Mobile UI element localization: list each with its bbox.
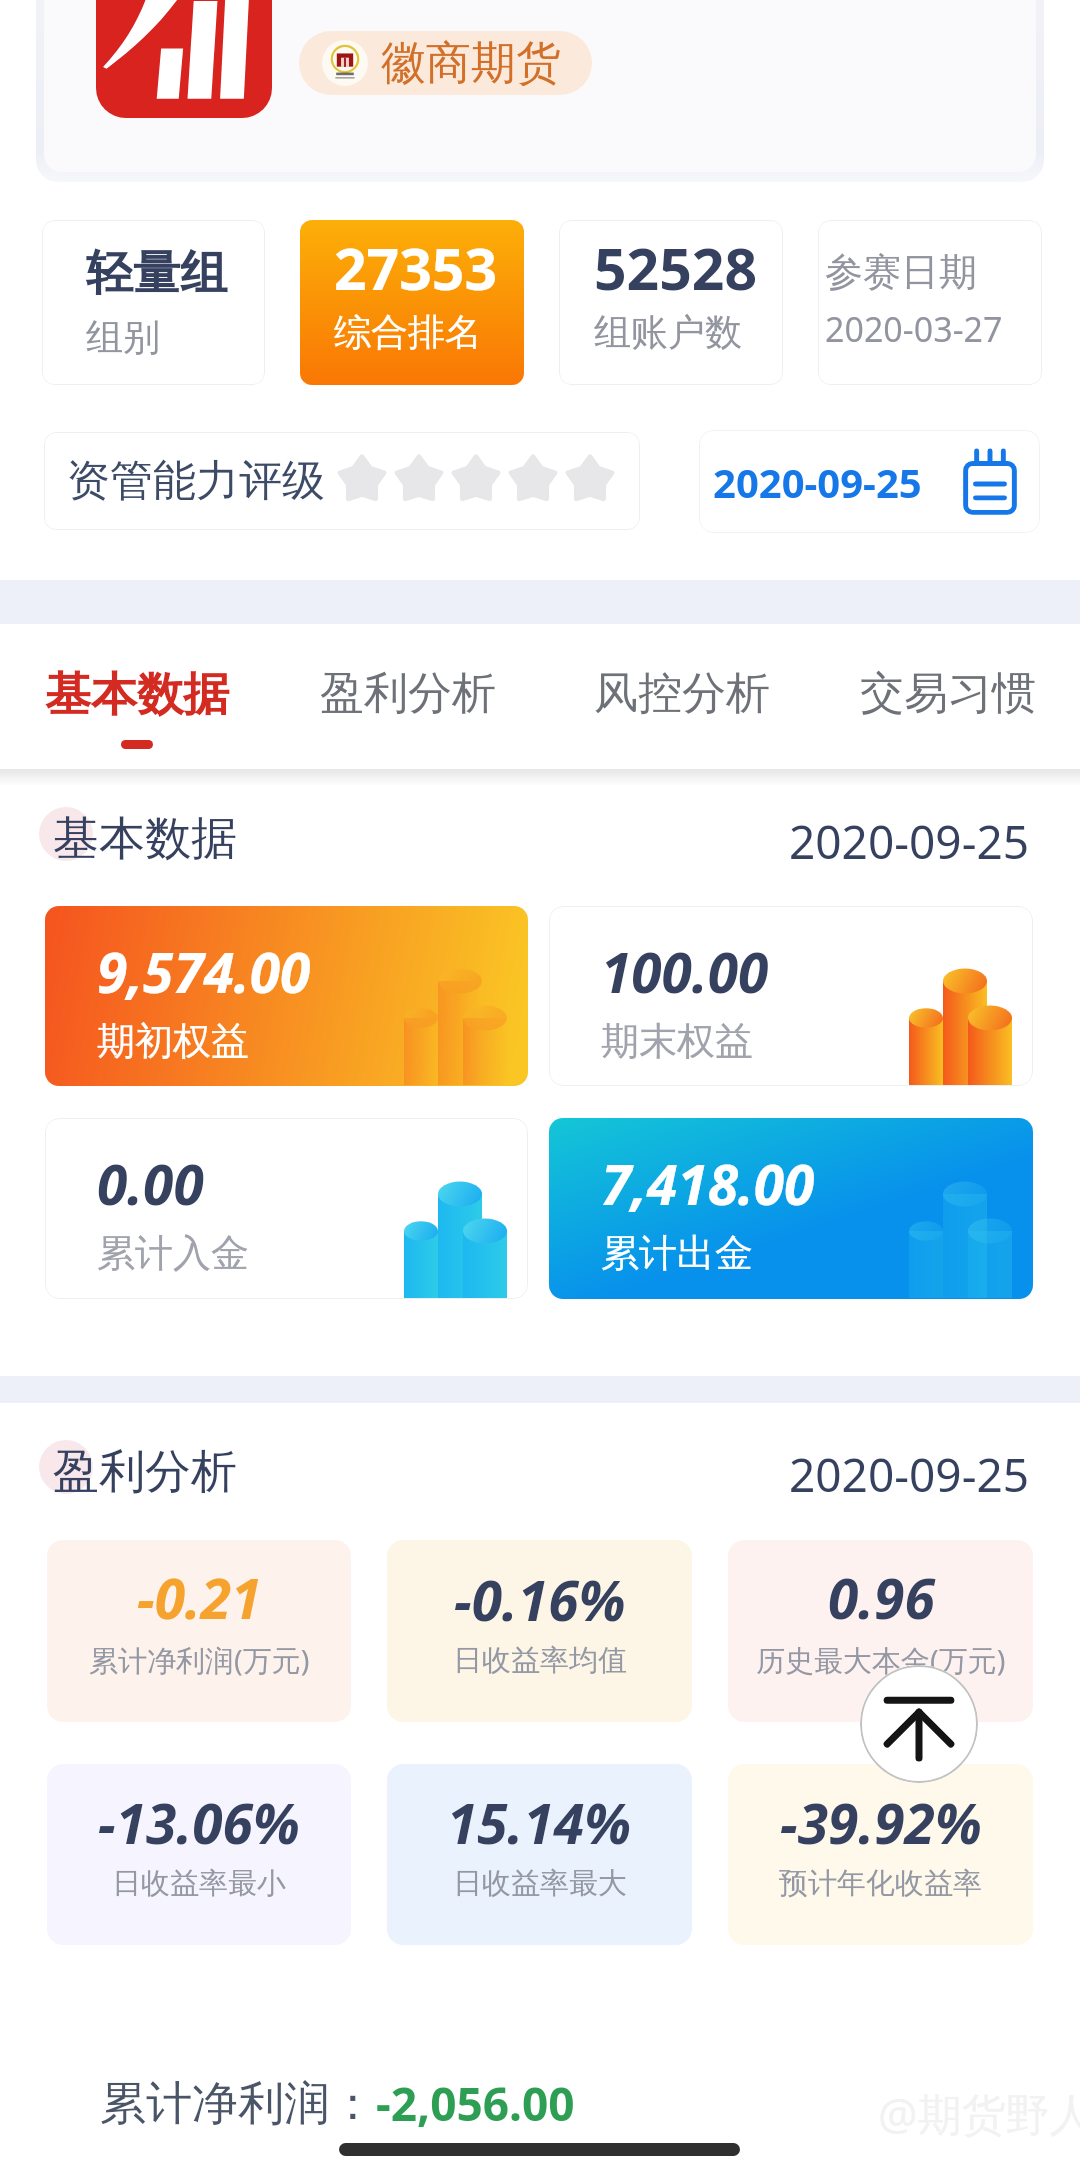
staticText: 参赛日期 xyxy=(825,248,977,296)
button[interactable]: 0.96 xyxy=(728,1540,1033,1722)
staticText: 累计净利润： xyxy=(100,2075,376,2133)
staticText: -39.92% xyxy=(780,1785,982,1860)
staticText: 累计出金 xyxy=(601,1229,753,1277)
button[interactable]: 52528 xyxy=(559,220,783,385)
staticText: 2020-09-25 xyxy=(789,1443,1030,1506)
staticText: 徽商期货 xyxy=(381,35,561,92)
staticText: 交易习惯 xyxy=(860,666,1036,721)
staticText: 综合排名 xyxy=(334,309,482,356)
button[interactable]: 盈利分析 xyxy=(298,646,518,766)
button[interactable]: App logo xyxy=(96,0,272,118)
staticText: 7,418.00 xyxy=(601,1146,815,1221)
button[interactable]: -0.21 xyxy=(47,1540,351,1722)
staticText: 日收益率均值 xyxy=(453,1642,627,1679)
staticText: 资管能力评级 xyxy=(67,454,325,508)
staticText: 100.00 xyxy=(601,934,769,1009)
staticText: 日收益率最大 xyxy=(453,1865,627,1902)
staticText: 轻量组 xyxy=(86,244,227,303)
staticText: 累计入金 xyxy=(97,1229,249,1277)
button[interactable]: 参赛日期 xyxy=(818,220,1042,385)
button[interactable]: -0.16% xyxy=(387,1540,692,1722)
staticText: 期末权益 xyxy=(601,1017,753,1065)
button[interactable]: 27353 xyxy=(300,220,524,385)
staticText: @期货野人 xyxy=(878,2083,1080,2143)
staticText: 基本数据 xyxy=(45,666,229,724)
staticText: 日收益率最小 xyxy=(112,1865,286,1902)
button[interactable]: -13.06% xyxy=(47,1764,351,1945)
staticText: 期初权益 xyxy=(97,1017,249,1065)
staticText: 累计净利润(万元) xyxy=(89,1640,310,1680)
staticText: 预计年化收益率 xyxy=(779,1865,982,1902)
button[interactable]: 7,418.00 xyxy=(549,1118,1033,1299)
button[interactable]: 基本数据 xyxy=(23,646,251,769)
staticText: 风控分析 xyxy=(594,666,770,721)
staticText: 组账户数 xyxy=(594,309,742,356)
staticText: 2020-03-27 xyxy=(825,306,1003,352)
button[interactable]: 交易习惯 xyxy=(838,646,1058,766)
staticText: 27353 xyxy=(334,229,498,307)
staticText: 2020-09-25 xyxy=(713,455,922,509)
staticText: 盈利分析 xyxy=(320,666,496,721)
button[interactable]: 2020-09-25 xyxy=(699,430,1040,533)
button[interactable]: -39.92% xyxy=(728,1764,1033,1945)
button[interactable]: 0.00 xyxy=(45,1118,528,1299)
button[interactable]: 轻量组 xyxy=(42,220,265,385)
staticText: 2020-09-25 xyxy=(789,810,1030,873)
button[interactable]: Scroll to top xyxy=(860,1665,978,1783)
staticText: -0.16% xyxy=(454,1562,626,1637)
button[interactable]: 风控分析 xyxy=(572,646,792,766)
button[interactable]: 资管能力评级 xyxy=(44,432,640,530)
staticText: 15.14% xyxy=(447,1785,632,1860)
staticText: 0.96 xyxy=(828,1560,935,1635)
staticText: 历史最大本金(万元) xyxy=(756,1640,1006,1680)
staticText: 0.00 xyxy=(97,1146,204,1221)
staticText: -13.06% xyxy=(98,1785,300,1860)
staticText: 盈利分析 xyxy=(53,1443,237,1501)
staticText: 9,574.00 xyxy=(97,934,311,1009)
button[interactable]: 9,574.00 xyxy=(45,906,528,1086)
staticText: -0.21 xyxy=(137,1560,262,1635)
button[interactable]: 徽商期货 xyxy=(299,31,592,95)
button[interactable]: 15.14% xyxy=(387,1764,692,1945)
staticText: 52528 xyxy=(594,229,758,307)
button[interactable]: 100.00 xyxy=(549,906,1033,1086)
staticText: 组别 xyxy=(86,314,160,361)
staticText: 基本数据 xyxy=(53,810,237,868)
staticText: -2,056.00 xyxy=(376,2072,575,2135)
